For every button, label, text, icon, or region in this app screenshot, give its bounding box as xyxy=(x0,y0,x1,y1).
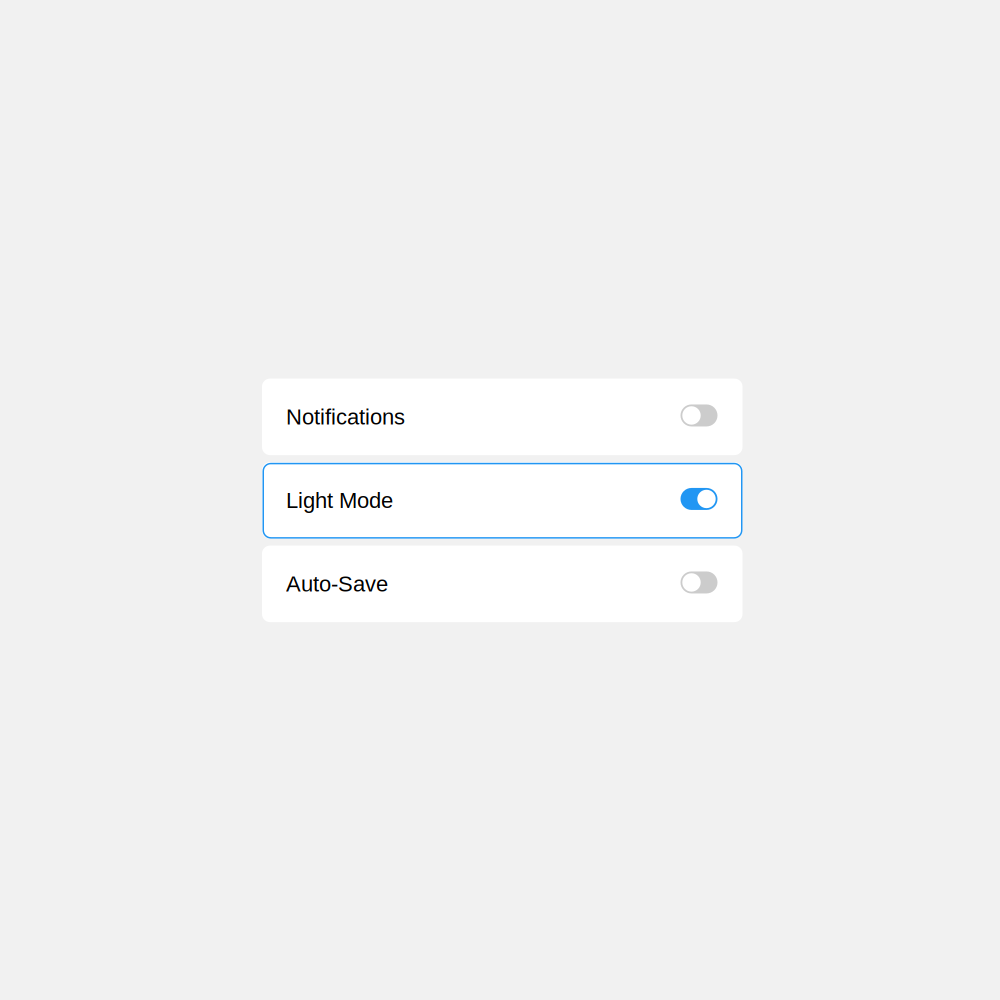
button[interactable]: Auto-Save, off xyxy=(262,546,742,622)
staticText: Auto-Save xyxy=(286,572,388,596)
button[interactable]: Light Mode, on xyxy=(262,462,742,539)
staticText: Notifications xyxy=(286,405,405,429)
staticText: Light Mode xyxy=(286,488,393,513)
button[interactable]: Notifications, off xyxy=(262,379,742,455)
